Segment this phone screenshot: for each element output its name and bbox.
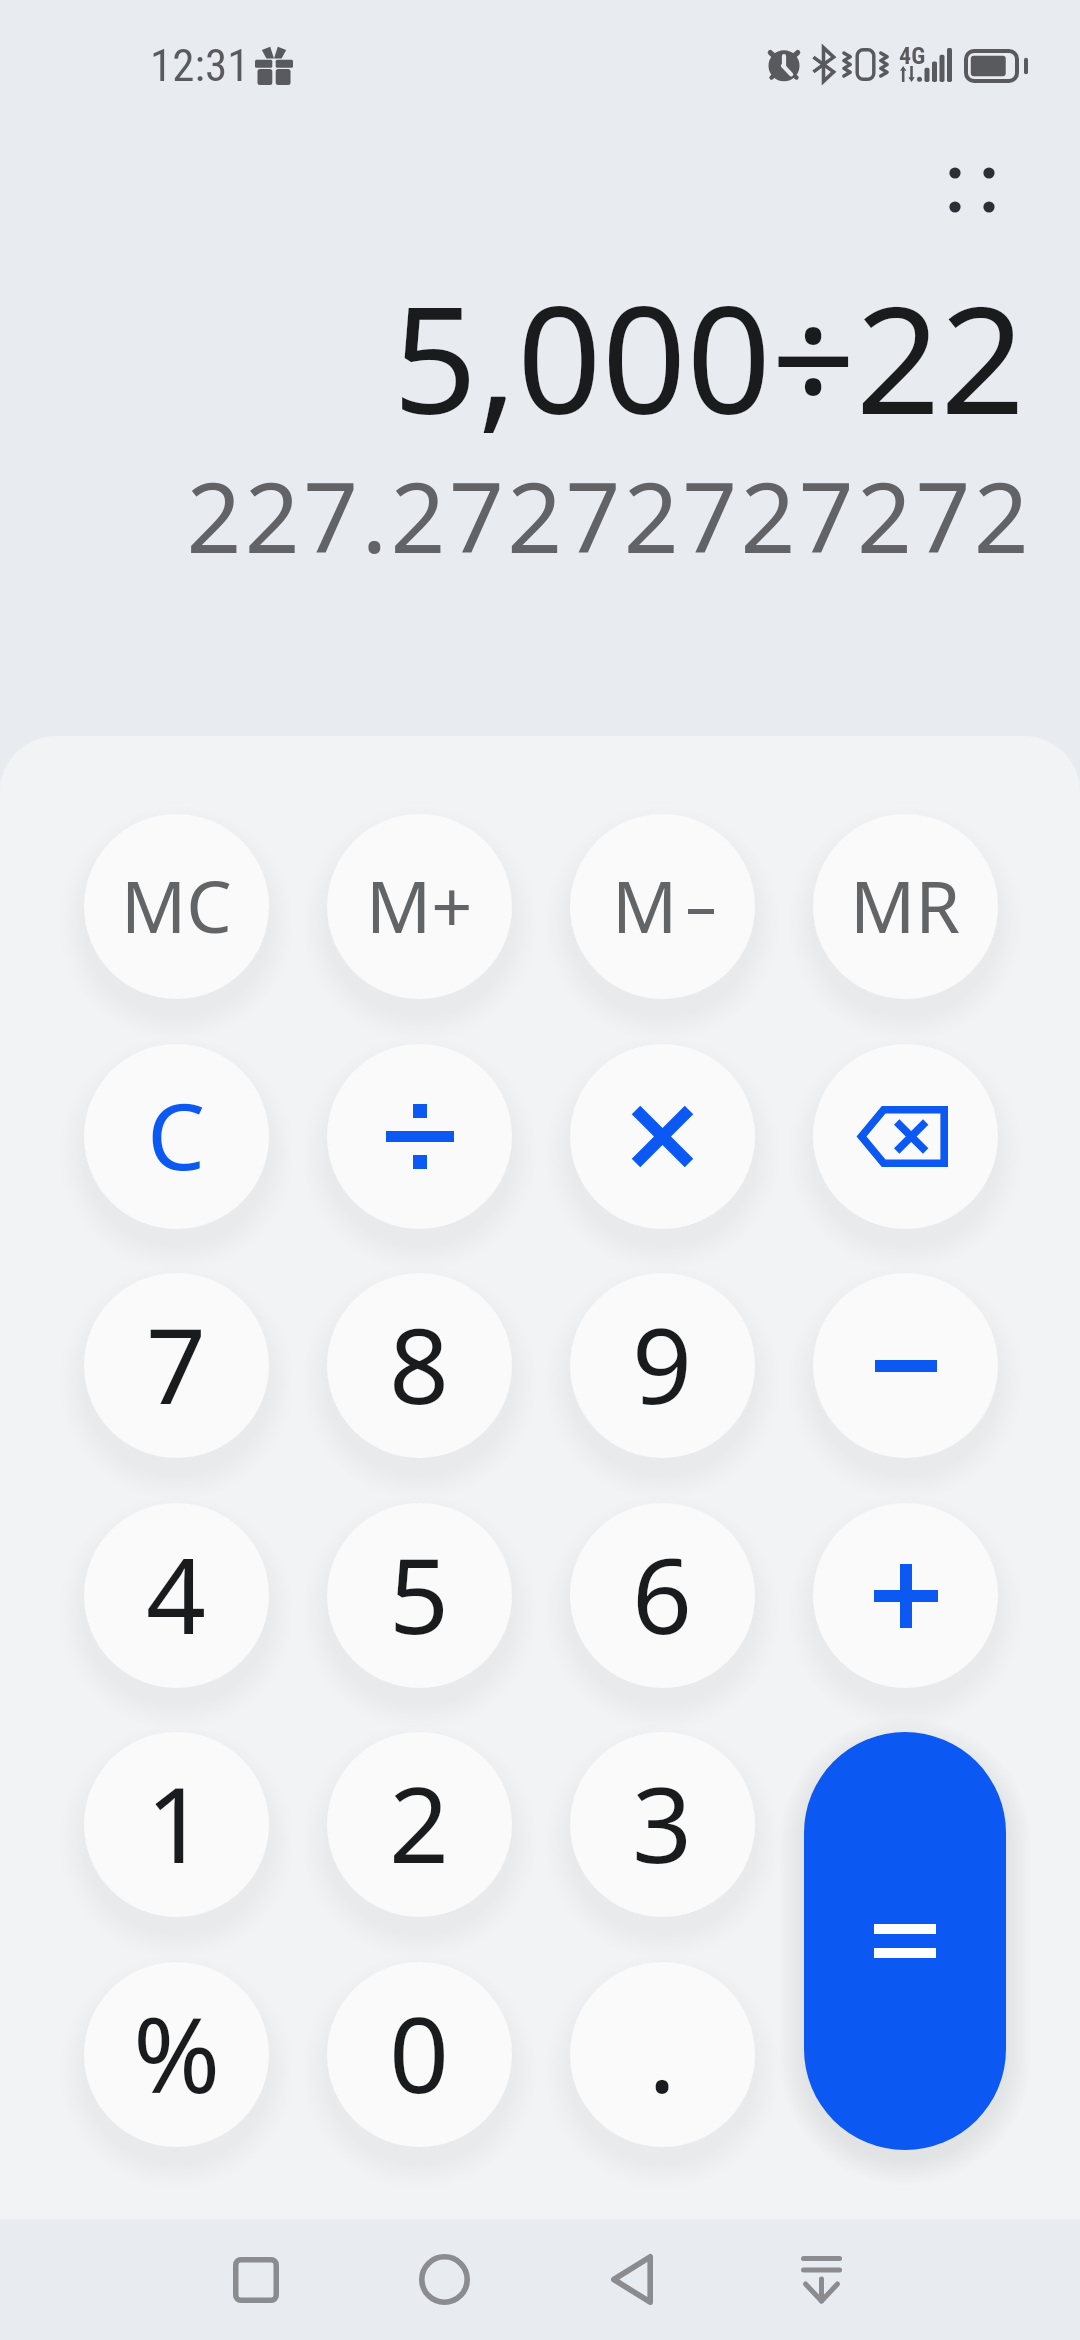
button[interactable]: 5 (327, 1503, 512, 1688)
staticText: 5,000÷22 (0, 256, 1025, 458)
button[interactable]: 2 (327, 1732, 512, 1917)
staticText: MC (121, 856, 232, 954)
button[interactable]: MC (84, 814, 269, 999)
button[interactable]: 8 (327, 1273, 512, 1458)
staticText: 9 (632, 1292, 693, 1435)
button[interactable]: % (84, 1962, 269, 2147)
button[interactable]: 6 (570, 1503, 755, 1688)
staticText: 2 (389, 1751, 450, 1894)
staticText: 3 (632, 1751, 693, 1894)
button[interactable]: Subtract (813, 1273, 998, 1458)
staticText: 227.27272727272 (0, 450, 1032, 581)
button[interactable]: Backspace (813, 1044, 998, 1229)
button[interactable]: More options (907, 125, 1037, 255)
button[interactable]: Add (813, 1503, 998, 1688)
button[interactable]: M+ (327, 814, 512, 999)
staticText: 5 (389, 1522, 450, 1665)
button[interactable]: Divide (327, 1044, 512, 1229)
button[interactable]: Home (384, 2219, 504, 2340)
button[interactable]: Multiply (570, 1044, 755, 1229)
button[interactable]: 3 (570, 1732, 755, 1917)
button[interactable]: 4 (84, 1503, 269, 1688)
staticText: M+ (366, 856, 473, 954)
button[interactable]: Recents (196, 2219, 316, 2340)
staticText: MR (850, 856, 961, 954)
staticText: . (648, 1981, 677, 2124)
staticText: M (612, 856, 678, 954)
staticText: 6 (632, 1522, 693, 1665)
button[interactable]: Equals (804, 1732, 1006, 2150)
staticText: 0 (389, 1981, 450, 2124)
staticText: 4 (146, 1522, 207, 1665)
button[interactable]: M (570, 814, 755, 999)
button[interactable]: 0 (327, 1962, 512, 2147)
button[interactable]: C (84, 1044, 269, 1229)
button[interactable]: . (570, 1962, 755, 2147)
staticText: % (133, 1981, 221, 2124)
button[interactable]: Hide keyboard (761, 2219, 881, 2340)
staticText: 8 (389, 1292, 450, 1435)
staticText: C (147, 1072, 206, 1197)
staticText: 1 (146, 1751, 207, 1894)
staticText: 4G (899, 42, 926, 70)
button[interactable]: 7 (84, 1273, 269, 1458)
button[interactable]: MR (813, 814, 998, 999)
button[interactable]: Back (571, 2219, 691, 2340)
staticText: 7 (146, 1292, 207, 1435)
staticText: 12:31 (150, 39, 250, 92)
button[interactable]: 9 (570, 1273, 755, 1458)
button[interactable]: 1 (84, 1732, 269, 1917)
